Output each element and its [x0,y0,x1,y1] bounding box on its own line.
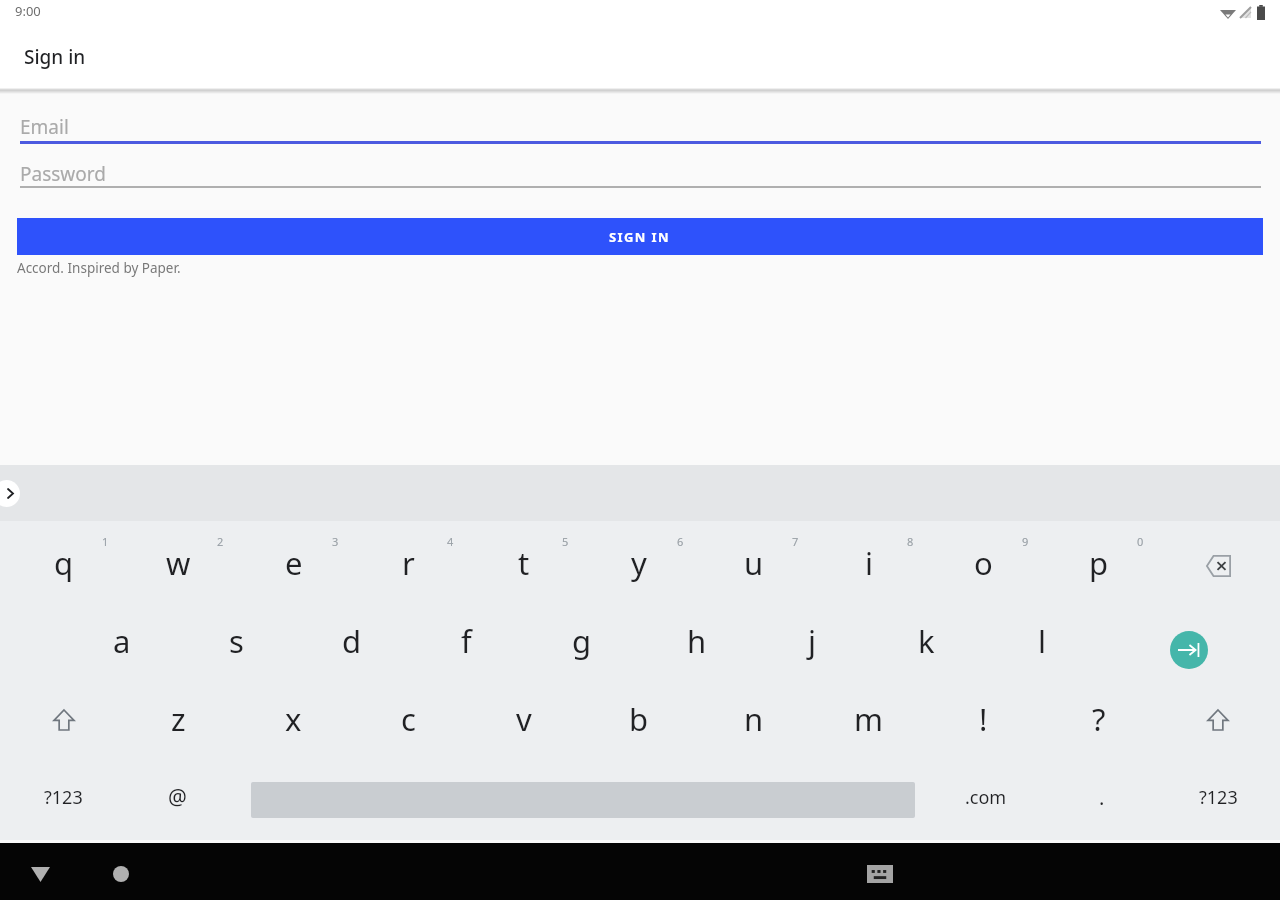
button[interactable]: ?123 [1157,758,1280,836]
staticText: v [516,698,532,740]
other: Signal [1240,7,1251,18]
other: Wifi [1220,6,1236,19]
staticText: f [461,620,472,662]
button[interactable]: l [984,602,1099,680]
staticText: w [166,542,191,584]
button[interactable]: Shift [6,680,121,758]
staticText: ? [1092,698,1106,740]
button[interactable]: b [581,680,696,758]
staticText: Accord. Inspired by Paper. [17,259,181,277]
button[interactable]: c [351,680,466,758]
staticText: q [54,542,74,584]
button[interactable]: Switch keyboard [863,857,897,891]
button[interactable]: k [869,602,984,680]
staticText: 1 [102,534,109,549]
staticText: 4 [447,534,454,549]
staticText: u [744,542,764,584]
staticText: z [171,698,186,740]
staticText: n [744,698,764,740]
button[interactable]: f [409,602,524,680]
staticText: g [572,620,592,662]
staticText: @ [168,783,187,812]
button[interactable]: Home [104,857,138,891]
staticText: Password [20,161,106,187]
button[interactable]: z [121,680,236,758]
staticText: 9 [1022,534,1029,549]
staticText: 7 [792,534,799,549]
staticText: ?123 [1199,785,1238,810]
staticText: Email [20,114,69,140]
button[interactable]: h [639,602,754,680]
staticText: 5 [562,534,569,549]
button[interactable]: . [1060,758,1157,836]
button[interactable]: d [294,602,409,680]
button[interactable]: s [179,602,294,680]
button[interactable]: Password [0,158,1280,188]
button[interactable]: ! [926,680,1041,758]
button[interactable]: Backspace [1156,524,1280,602]
staticText: SIGN IN [609,228,671,246]
button[interactable]: Hide keyboard [23,857,57,891]
button[interactable]: m [811,680,926,758]
button[interactable]: 8 [811,524,926,602]
staticText: ?123 [44,785,83,810]
button[interactable]: SIGN IN [17,218,1263,255]
button[interactable]: Shift [1156,680,1280,758]
staticText: . [1099,784,1105,811]
staticText: e [285,542,303,584]
staticText: k [918,620,935,662]
button[interactable]: 5 [466,524,581,602]
button[interactable]: 2 [121,524,236,602]
button[interactable]: ? [1041,680,1156,758]
staticText: j [808,620,816,662]
button[interactable]: 7 [696,524,811,602]
button[interactable]: x [236,680,351,758]
staticText: .com [965,785,1007,810]
button[interactable]: a [64,602,179,680]
button[interactable]: g [524,602,639,680]
staticText: l [1038,620,1046,662]
staticText: x [285,698,302,740]
staticText: o [974,542,993,584]
staticText: t [518,542,530,584]
button[interactable]: 9 [926,524,1041,602]
button[interactable]: 3 [236,524,351,602]
staticText: h [687,620,707,662]
staticText: y [631,542,647,584]
button[interactable]: @ [121,758,246,836]
button[interactable]: n [696,680,811,758]
button[interactable]: Email [0,112,1280,144]
button[interactable]: Space [246,758,920,836]
button[interactable]: v [466,680,581,758]
button[interactable]: Go to next field [1099,602,1272,680]
button[interactable]: 4 [351,524,466,602]
staticText: ! [979,698,988,740]
staticText: a [113,620,131,662]
button[interactable]: j [754,602,869,680]
staticText: 6 [677,534,684,549]
button[interactable]: 0 [1041,524,1156,602]
button[interactable]: 6 [581,524,696,602]
staticText: 8 [907,534,914,549]
staticText: c [401,698,416,740]
button[interactable]: Show suggestions [0,480,20,507]
staticText: 0 [1137,534,1144,549]
staticText: b [629,698,649,740]
staticText: Sign in [24,44,86,70]
other: Battery [1257,5,1265,20]
button[interactable]: 1 [6,524,121,602]
staticText: s [229,620,244,662]
staticText: r [402,542,415,584]
staticText: 2 [217,534,224,549]
button[interactable]: ?123 [6,758,121,836]
staticText: m [854,698,883,740]
staticText: 3 [332,534,339,549]
staticText: i [865,542,873,584]
staticText: d [342,620,362,662]
staticText: p [1089,542,1109,584]
staticText: 9:00 [15,2,41,20]
button[interactable]: .com [920,758,1060,836]
